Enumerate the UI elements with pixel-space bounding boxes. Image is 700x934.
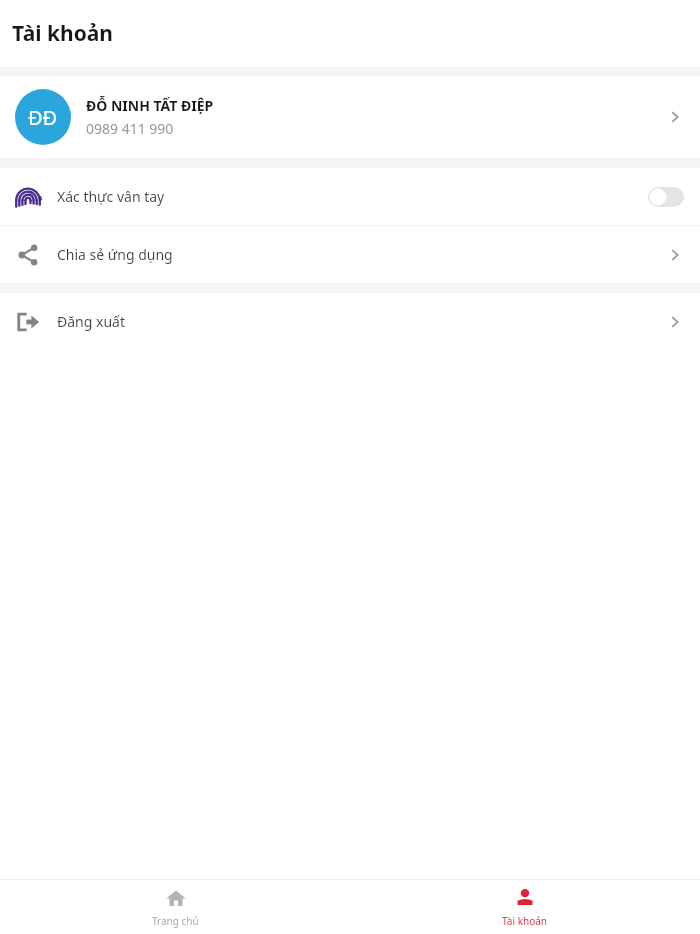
- button[interactable]: Trang chủ: [0, 880, 350, 934]
- staticText: ĐỖ NINH TẤT ĐIỆP: [86, 96, 214, 115]
- staticText: Tài khoản: [12, 19, 113, 48]
- staticText: Trang chủ: [152, 914, 199, 928]
- button[interactable]: Bật xác thực vân tay: [648, 187, 684, 207]
- button[interactable]: Chia sẻ ứng dụng: [0, 226, 700, 283]
- button[interactable]: ĐĐ: [0, 76, 700, 158]
- button[interactable]: Xác thực vân tay: [0, 168, 700, 225]
- staticText: Tài khoản: [502, 914, 548, 928]
- button[interactable]: Tài khoản: [350, 880, 700, 934]
- other: Mở: [664, 311, 686, 333]
- staticText: ĐĐ: [28, 104, 58, 131]
- other: Mở: [664, 244, 686, 266]
- staticText: Xác thực vân tay: [57, 187, 165, 206]
- button[interactable]: Đăng xuất: [0, 293, 700, 350]
- other: Mở: [664, 106, 686, 128]
- staticText: Đăng xuất: [57, 312, 125, 331]
- staticText: 0989 411 990: [86, 119, 174, 138]
- staticText: Chia sẻ ứng dụng: [57, 245, 173, 264]
